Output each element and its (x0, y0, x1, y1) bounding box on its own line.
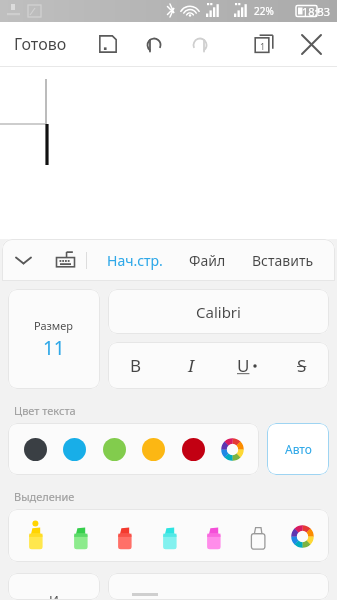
button[interactable]: Green highlight (63, 513, 99, 559)
button[interactable]: Close (287, 22, 335, 66)
staticText: U (237, 354, 250, 377)
button[interactable]: Underline (219, 342, 274, 389)
staticText: 18:33 (302, 4, 331, 19)
staticText: Выделение (14, 489, 75, 504)
button[interactable]: Вставить (248, 241, 318, 280)
staticText: 11 (43, 335, 65, 361)
button[interactable]: Save (85, 22, 131, 66)
button[interactable]: Open documents (241, 22, 287, 66)
staticText: Нач.стр. (107, 251, 163, 270)
button[interactable]: Размер (8, 289, 100, 389)
button[interactable]: Undo (131, 22, 177, 66)
staticText: Размер (34, 318, 74, 333)
button[interactable]: Strikethrough (274, 342, 329, 389)
button[interactable]: Green (97, 432, 131, 466)
staticText: Calibri (196, 302, 241, 322)
button[interactable]: Redo (177, 22, 223, 66)
button[interactable]: Magenta highlight (196, 513, 232, 559)
button[interactable]: More text colours (215, 432, 249, 466)
button[interactable]: Cyan highlight (152, 513, 188, 559)
button[interactable]: More highlight colours (285, 519, 319, 553)
button[interactable]: Yellow highlight (18, 513, 54, 559)
button[interactable]: Авто (267, 423, 329, 475)
button[interactable]: Orange (136, 432, 170, 466)
button[interactable] (108, 573, 329, 600)
button[interactable]: Red highlight (107, 513, 143, 559)
staticText: S (297, 354, 307, 377)
staticText: И (49, 591, 59, 600)
button[interactable]: Collapse ribbon (2, 239, 44, 281)
staticText: Готово (14, 33, 67, 55)
button[interactable]: Red (176, 432, 210, 466)
button[interactable]: И (8, 573, 100, 600)
staticText: B (130, 354, 142, 377)
button[interactable]: Нач.стр. (103, 241, 167, 280)
button[interactable]: Готово (0, 23, 75, 65)
button[interactable]: No highlight (240, 513, 276, 559)
button[interactable]: Bold (108, 342, 164, 389)
button[interactable]: Italic (164, 342, 219, 389)
staticText: Авто (285, 441, 312, 457)
button[interactable]: Blue (57, 432, 91, 466)
button[interactable]: Файл (185, 241, 230, 280)
staticText: 1 (260, 40, 266, 52)
staticText: I (188, 354, 195, 377)
button[interactable]: Hide keyboard (44, 239, 86, 281)
staticText: Цвет текста (14, 403, 76, 418)
button[interactable]: Black (18, 432, 52, 466)
button[interactable]: Calibri (108, 289, 329, 334)
staticText: 22% (254, 4, 274, 18)
staticText: Файл (189, 251, 226, 270)
staticText: Вставить (252, 251, 314, 270)
